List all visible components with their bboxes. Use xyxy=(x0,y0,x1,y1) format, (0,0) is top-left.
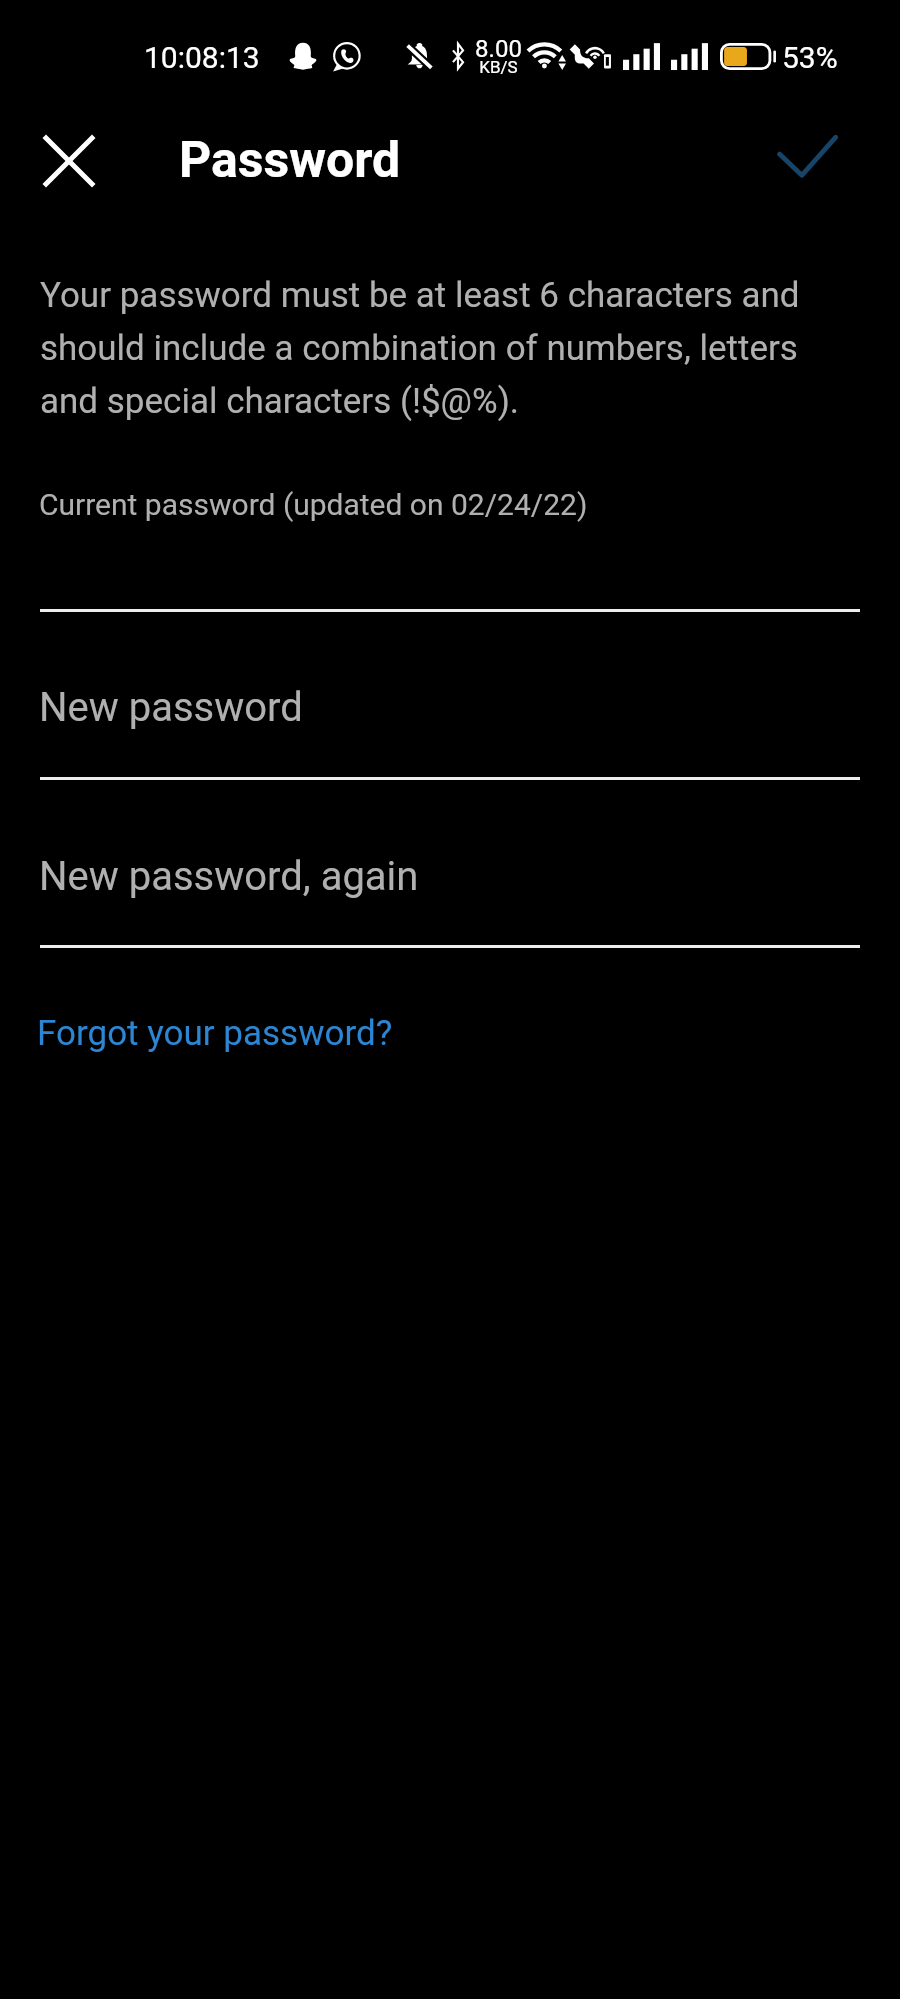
staticText: Forgot your password? xyxy=(37,1013,393,1054)
button[interactable]: Forgot your password? xyxy=(37,990,393,1077)
staticText: Current password (updated on 02/24/22) xyxy=(39,487,588,522)
staticText: New password, again xyxy=(39,853,419,900)
button[interactable]: Current password (updated on 02/24/22) xyxy=(40,470,860,612)
staticText: New password xyxy=(39,684,303,731)
staticText: 10:08:13 xyxy=(144,40,260,75)
button[interactable]: New password, again xyxy=(40,808,860,948)
button[interactable]: Save xyxy=(763,116,853,206)
staticText: KB/S xyxy=(475,57,522,77)
staticText: Your password must be at least 6 charact… xyxy=(40,265,850,424)
staticText: 53% xyxy=(782,40,838,75)
button[interactable]: New password xyxy=(40,640,860,780)
staticText: Password xyxy=(179,131,401,190)
button[interactable]: Close xyxy=(24,116,114,206)
staticText: 8.00 xyxy=(475,35,522,63)
